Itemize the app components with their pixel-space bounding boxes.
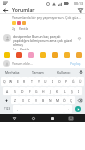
staticText: G <box>35 89 38 94</box>
button[interactable]: N <box>47 96 54 104</box>
button[interactable]: G <box>33 87 40 95</box>
staticText: K <box>56 89 59 94</box>
button[interactable]: H <box>40 87 47 95</box>
button[interactable]: Ö <box>61 96 68 104</box>
staticText: , <box>17 107 18 111</box>
staticText: Tamam <box>32 70 44 75</box>
staticText: Ğ <box>72 79 75 84</box>
button[interactable]: I <box>49 77 56 86</box>
staticText: J <box>50 89 51 94</box>
staticText: B <box>42 98 45 103</box>
staticText: 00:13 <box>74 1 83 6</box>
button[interactable]: Emoji <box>63 51 70 58</box>
button[interactable]: Yanıtla <box>19 27 29 31</box>
staticText: F <box>29 89 31 94</box>
button[interactable]: T <box>28 77 35 86</box>
button[interactable]: A <box>3 87 11 95</box>
staticText: Kullanıcı <box>57 70 71 75</box>
button[interactable]: E <box>14 77 21 86</box>
button[interactable]: J <box>47 87 54 95</box>
staticText: Ç <box>70 98 73 103</box>
button[interactable]: S <box>11 87 19 95</box>
button[interactable]: Ş <box>68 87 75 95</box>
button[interactable]: P <box>63 77 70 86</box>
staticText: ?123 <box>4 107 11 111</box>
staticText: N <box>49 98 52 103</box>
button[interactable]: X <box>19 96 26 104</box>
button[interactable]: Back <box>0 6 10 14</box>
button[interactable]: Kullanıcı <box>51 68 77 76</box>
button[interactable]: Backspace <box>75 96 84 104</box>
button[interactable]: Yanıtla <box>20 48 30 50</box>
button[interactable]: L <box>61 87 68 95</box>
staticText: M <box>56 98 60 103</box>
button[interactable]: W <box>7 77 14 86</box>
button[interactable]: Emoji <box>75 51 82 58</box>
button[interactable]: Like <box>76 35 82 41</box>
staticText: Ü <box>79 79 82 84</box>
button[interactable]: Recents <box>47 114 57 122</box>
button[interactable]: dostpembe Bunun kaç parçalı yapıldığını … <box>3 34 82 50</box>
button[interactable]: Q <box>1 77 7 86</box>
staticText: H <box>42 89 45 94</box>
staticText: Ö <box>63 98 66 103</box>
button[interactable]: R <box>21 77 28 86</box>
button[interactable]: Emoji <box>27 51 34 58</box>
button[interactable]: , <box>13 105 21 113</box>
button[interactable]: Enter <box>75 106 81 112</box>
button[interactable]: Paylaş <box>69 60 82 67</box>
button[interactable]: F <box>26 87 33 95</box>
staticText: 2g <box>12 27 16 31</box>
button[interactable]: Shift <box>1 96 11 104</box>
staticText: Merhaba <box>5 70 20 75</box>
button[interactable]: Emoji <box>39 51 46 58</box>
button[interactable]: Merhaba <box>0 68 25 76</box>
staticText: dostpembe Bunun kaç parçalı yapıldığını … <box>13 34 76 47</box>
button[interactable]: D <box>19 87 26 95</box>
button[interactable]: M <box>54 96 61 104</box>
staticText: Z <box>14 98 16 103</box>
button[interactable]: Filter <box>75 6 85 14</box>
staticText: E <box>17 79 19 84</box>
button[interactable]: Ü <box>77 77 84 86</box>
staticText: R <box>23 79 26 84</box>
staticText: S <box>14 89 16 94</box>
button[interactable]: B <box>40 96 47 104</box>
button[interactable]: C <box>26 96 33 104</box>
button[interactable]: O <box>56 77 63 86</box>
button[interactable]: Y <box>35 77 42 86</box>
staticText: Yorum ekle... <box>12 61 69 66</box>
button[interactable]: Emoji <box>51 51 58 58</box>
button[interactable]: Home <box>28 114 38 122</box>
button[interactable]: U <box>42 77 49 86</box>
staticText: X <box>22 98 24 103</box>
button[interactable]: Emoji <box>3 51 10 58</box>
staticText: U <box>44 79 47 84</box>
button[interactable]: I <box>75 87 82 95</box>
button[interactable]: ?123 <box>1 105 13 113</box>
staticText: Ş <box>71 89 73 94</box>
button[interactable]: Ğ <box>70 77 77 86</box>
button[interactable]: Back <box>9 114 19 122</box>
button[interactable]: V <box>33 96 40 104</box>
button[interactable]: Tamam <box>25 68 51 76</box>
button[interactable]: Emoji <box>15 51 22 58</box>
staticText: I <box>78 89 80 94</box>
button[interactable]: Ç <box>68 96 75 104</box>
staticText: T <box>31 79 33 84</box>
staticText: W <box>9 79 13 84</box>
button[interactable]: Z <box>11 96 19 104</box>
button[interactable]: Voice input <box>77 68 85 76</box>
staticText: 1g <box>13 48 17 50</box>
staticText: Yorumlar <box>12 7 35 14</box>
staticText: Y <box>38 79 40 84</box>
staticText: . <box>68 107 69 111</box>
button[interactable]: K <box>54 87 61 95</box>
staticText: Yorumlarda bir şey yapmıyorsun. Çok güze… <box>12 15 82 20</box>
staticText: O <box>58 79 61 84</box>
staticText: I <box>52 79 54 84</box>
button[interactable]: Hide keyboard <box>66 114 76 122</box>
staticText: D <box>21 89 24 94</box>
